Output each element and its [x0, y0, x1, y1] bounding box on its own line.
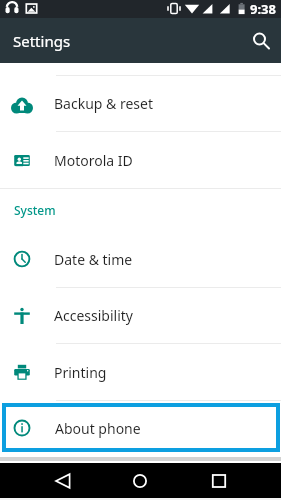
staticText: 9:38: [250, 0, 276, 18]
button[interactable]: Printing: [0, 344, 281, 400]
staticText: Motorola ID: [54, 151, 133, 170]
staticText: Printing: [54, 363, 107, 382]
staticText: Date & time: [54, 250, 133, 269]
button[interactable]: Motorola ID: [0, 132, 281, 188]
button[interactable]: Backup & reset: [0, 76, 281, 131]
staticText: Backup & reset: [54, 94, 153, 113]
button[interactable]: Back: [42, 463, 83, 498]
staticText: System: [14, 202, 56, 218]
button[interactable]: About phone: [2, 403, 280, 452]
button[interactable]: Accessibility: [0, 288, 281, 343]
button[interactable]: Recents: [198, 463, 239, 498]
staticText: Settings: [13, 31, 71, 51]
staticText: About phone: [55, 419, 141, 438]
staticText: Accessibility: [54, 306, 133, 325]
button[interactable]: Home: [119, 463, 160, 498]
button[interactable]: Date & time: [0, 231, 281, 287]
button[interactable]: Search: [241, 21, 281, 61]
